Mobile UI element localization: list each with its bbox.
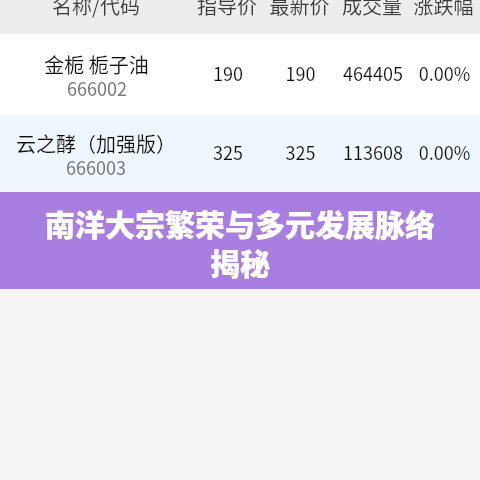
button[interactable]: 涨跌幅 [407, 0, 480, 22]
staticText: 金栀 栀子油 [44, 50, 149, 79]
staticText: 成交量 [337, 0, 407, 20]
staticText: 指导价 [192, 0, 262, 20]
staticText: 464405 [338, 60, 408, 86]
button[interactable]: 成交量 [337, 0, 407, 22]
button[interactable]: 指导价 [192, 0, 262, 22]
staticText: 666003 [66, 154, 126, 180]
button[interactable]: 最新价 [262, 0, 337, 22]
staticText: 0.00% [408, 139, 480, 165]
staticText: 190 [193, 60, 263, 86]
staticText: 190 [263, 60, 338, 86]
button[interactable]: 金栀 栀子油 [0, 34, 480, 115]
staticText: 325 [263, 139, 338, 165]
staticText: 666002 [67, 75, 127, 101]
staticText: 南洋大宗繁荣与多元发展脉络揭秘 [36, 201, 444, 284]
button[interactable]: 云之酵（加强版） [0, 115, 480, 192]
staticText: 云之酵（加强版） [16, 129, 176, 158]
staticText: 名称/代码 [0, 0, 192, 20]
button[interactable]: 南洋大宗繁荣与多元发展脉络揭秘 [0, 192, 480, 289]
staticText: 325 [193, 139, 263, 165]
staticText: 113608 [338, 139, 408, 165]
staticText: 最新价 [262, 0, 337, 20]
staticText: 0.00% [408, 60, 480, 86]
staticText: 涨跌幅 [407, 0, 480, 20]
button[interactable]: 名称/代码 [0, 0, 192, 22]
